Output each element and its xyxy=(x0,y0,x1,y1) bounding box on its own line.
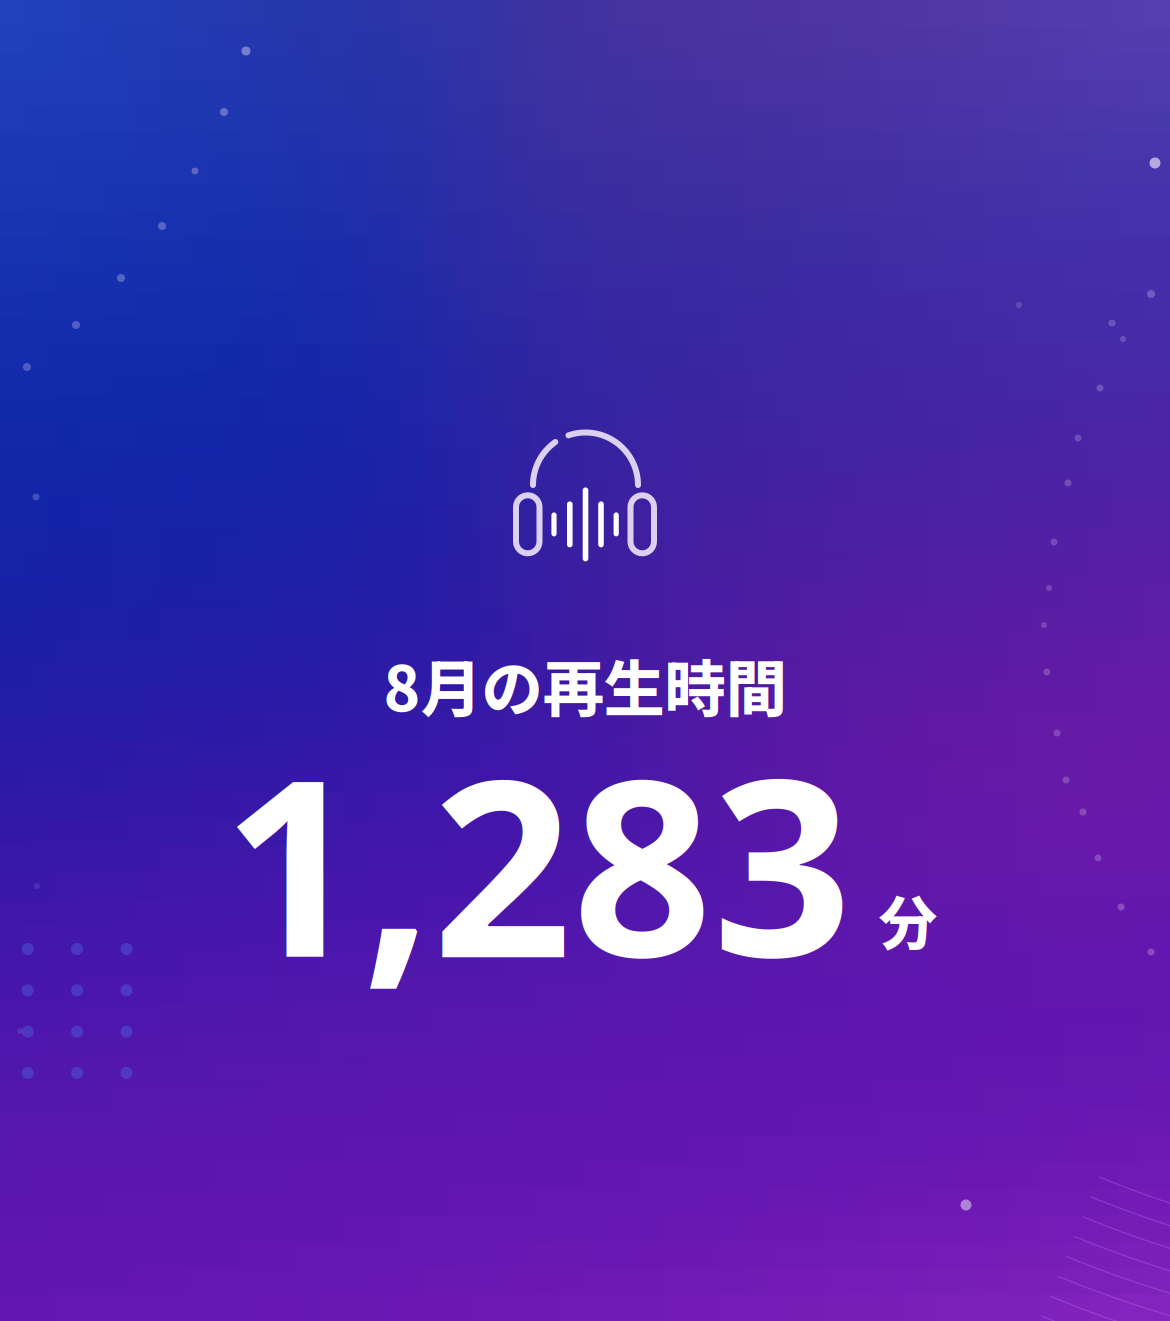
staticText: 分 xyxy=(878,877,937,962)
staticText: 1,283 xyxy=(222,700,852,1024)
staticText: 8月の再生時間 xyxy=(383,640,786,729)
